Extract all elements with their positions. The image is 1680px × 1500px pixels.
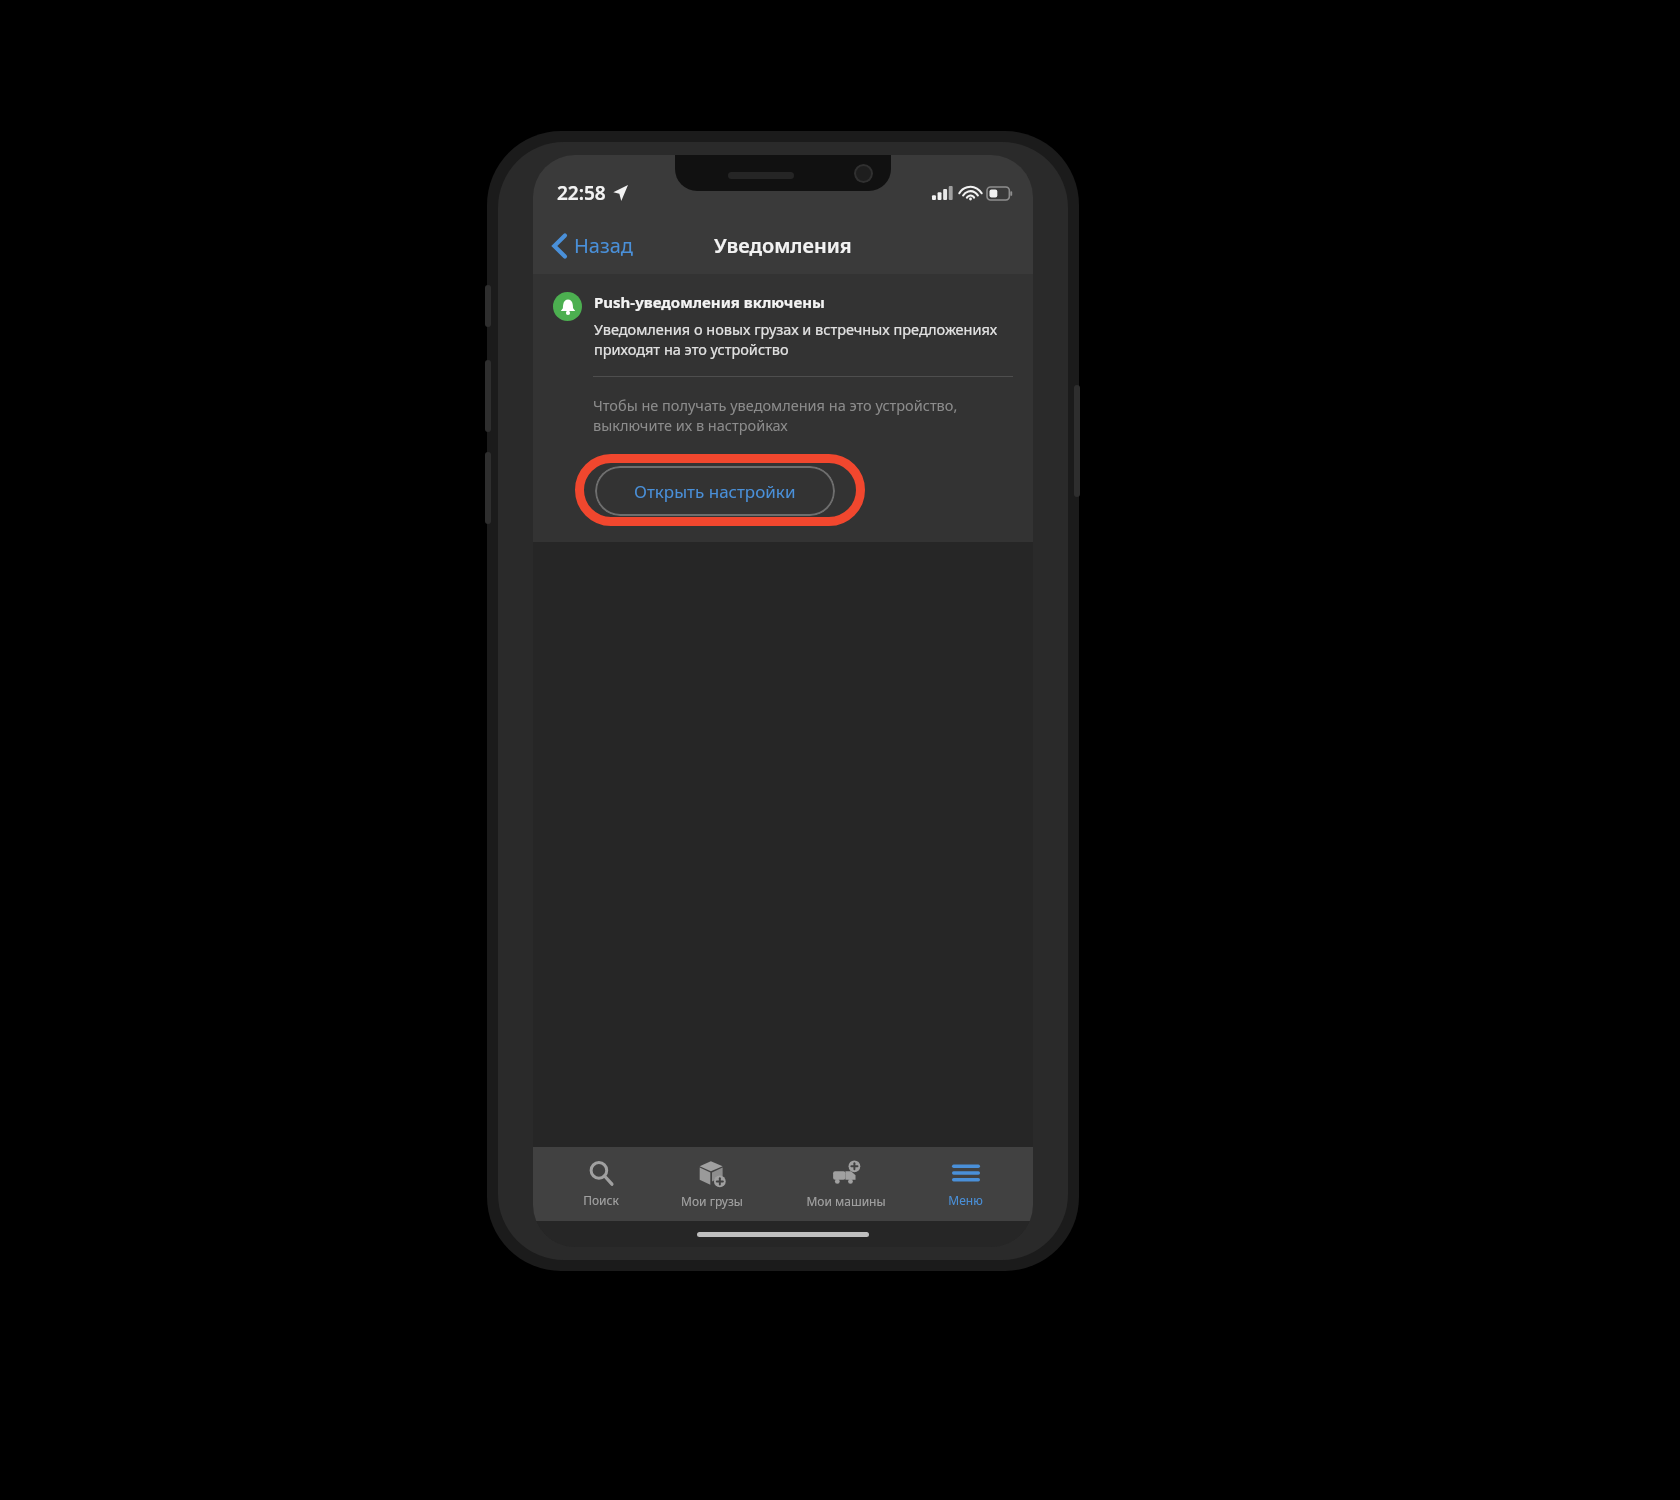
button[interactable]: Мои грузы — [669, 1153, 755, 1215]
staticText: Назад — [574, 232, 633, 259]
button[interactable]: Поиск — [571, 1154, 631, 1214]
staticText: 22:58 — [557, 180, 606, 206]
staticText: Открыть настройки — [634, 480, 796, 503]
button[interactable]: Мои машины — [794, 1153, 898, 1215]
other: Мои машины — [832, 1159, 860, 1187]
staticText: Чтобы не получать уведомления на это уст… — [593, 395, 1003, 436]
other: Меню — [952, 1160, 980, 1186]
staticText: Уведомления о новых грузах и встречных п… — [594, 319, 1015, 360]
button[interactable]: Открыть настройки — [595, 466, 835, 516]
staticText: Мои грузы — [681, 1193, 743, 1209]
staticText: Меню — [948, 1192, 983, 1208]
staticText: Мои машины — [806, 1193, 886, 1209]
other: Поиск — [588, 1160, 614, 1186]
other: Мои грузы — [698, 1159, 726, 1187]
staticText: Поиск — [583, 1192, 619, 1208]
staticText: Уведомления — [714, 232, 852, 259]
button[interactable]: Меню — [936, 1154, 995, 1214]
staticText: Push-уведомления включены — [594, 292, 825, 312]
button[interactable]: Назад — [533, 224, 647, 267]
